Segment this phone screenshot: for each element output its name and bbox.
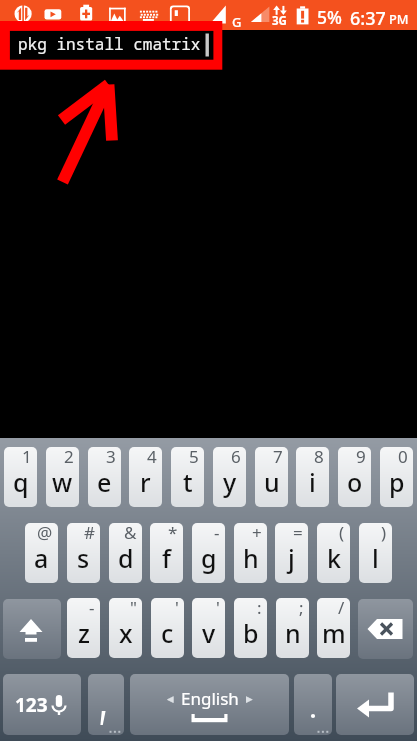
staticText: 7 — [273, 447, 283, 468]
button[interactable]: Symbols and voice input — [3, 674, 81, 735]
staticText: ' — [216, 598, 220, 619]
staticText: g — [201, 541, 217, 575]
staticText: u — [264, 465, 280, 499]
staticText: 123 — [15, 692, 48, 718]
staticText: 2 — [64, 447, 74, 468]
button[interactable]: 4 — [129, 447, 162, 507]
staticText: - — [89, 598, 95, 619]
button[interactable]: = — [275, 523, 308, 583]
button[interactable]: Backspace — [358, 599, 413, 659]
button[interactable]: * — [150, 523, 183, 583]
staticText: z — [78, 616, 90, 650]
staticText: s — [77, 541, 90, 575]
button[interactable]: - — [67, 598, 100, 658]
staticText: v — [202, 616, 216, 650]
staticText: j — [288, 541, 295, 575]
staticText: ◂ — [167, 691, 174, 706]
staticText: @ — [37, 523, 53, 544]
button[interactable]: ' — [151, 598, 184, 658]
staticText: m — [322, 616, 346, 650]
button[interactable]: ; — [276, 598, 309, 658]
staticText: 4 — [147, 447, 157, 468]
button[interactable]: ' — [192, 598, 225, 658]
staticText: ) — [381, 523, 387, 544]
button[interactable]: Comma — [88, 674, 124, 735]
staticText: a — [34, 541, 49, 575]
staticText: 3 — [106, 447, 116, 468]
staticText: x — [119, 616, 133, 650]
staticText: 5% — [317, 5, 342, 29]
staticText: 9 — [356, 447, 366, 468]
staticText: i — [309, 465, 316, 499]
button[interactable]: 6 — [213, 447, 246, 507]
button[interactable]: @ — [25, 523, 58, 583]
staticText: q — [13, 465, 29, 499]
button[interactable]: 9 — [338, 447, 371, 507]
button[interactable]: 0 — [380, 447, 413, 507]
staticText: e — [97, 465, 112, 499]
staticText: ' — [175, 598, 179, 619]
button[interactable]: Period — [294, 674, 332, 735]
staticText: English — [181, 687, 239, 710]
staticText: y — [223, 465, 237, 499]
staticText: 3G — [272, 13, 287, 29]
staticText: # — [84, 523, 95, 544]
staticText: p — [389, 465, 405, 499]
staticText: / — [338, 598, 345, 619]
staticText: w — [52, 465, 73, 499]
button[interactable]: ) — [359, 523, 392, 583]
staticText: " — [130, 598, 137, 619]
button[interactable]: + — [234, 523, 267, 583]
staticText: PM — [389, 10, 409, 27]
staticText: 5 — [189, 447, 199, 468]
button[interactable]: # — [67, 523, 100, 583]
staticText: ; — [299, 598, 304, 619]
staticText: 6 — [231, 447, 241, 468]
staticText: r — [140, 465, 151, 499]
button[interactable]: Space — [130, 674, 289, 735]
staticText: & — [124, 523, 137, 544]
staticText: ( — [339, 523, 345, 544]
button[interactable]: 3 — [88, 447, 121, 507]
button[interactable]: 1 — [4, 447, 37, 507]
button[interactable]: & — [109, 523, 142, 583]
staticText: = — [293, 523, 303, 544]
staticText: c — [161, 616, 174, 650]
staticText: f — [162, 541, 171, 575]
button[interactable]: 7 — [255, 447, 288, 507]
staticText: G — [232, 13, 242, 30]
staticText: t — [183, 465, 193, 499]
staticText: 8 — [314, 447, 324, 468]
staticText: pkg install cmatrix — [18, 33, 201, 55]
button[interactable]: 8 — [296, 447, 329, 507]
staticText: : — [257, 598, 262, 619]
staticText: l — [372, 541, 379, 575]
staticText: 1 — [22, 447, 32, 468]
button[interactable]: - — [192, 523, 225, 583]
staticText: d — [118, 541, 134, 575]
button[interactable]: " — [109, 598, 142, 658]
button[interactable]: Shift — [3, 599, 61, 659]
button[interactable]: Enter — [336, 674, 414, 735]
staticText: ▸ — [246, 691, 253, 706]
button[interactable]: ( — [317, 523, 350, 583]
staticText: n — [285, 616, 301, 650]
button[interactable]: 2 — [46, 447, 79, 507]
staticText: - — [214, 523, 220, 544]
staticText: b — [243, 616, 259, 650]
staticText: + — [252, 523, 262, 544]
staticText: 6:37 — [350, 6, 386, 30]
button[interactable]: 5 — [171, 447, 204, 507]
button[interactable]: / — [317, 598, 350, 658]
staticText: 0 — [398, 447, 408, 468]
staticText: h — [243, 541, 259, 575]
staticText: k — [327, 541, 341, 575]
staticText: * — [168, 523, 178, 544]
button[interactable]: : — [234, 598, 267, 658]
staticText: o — [347, 465, 363, 499]
